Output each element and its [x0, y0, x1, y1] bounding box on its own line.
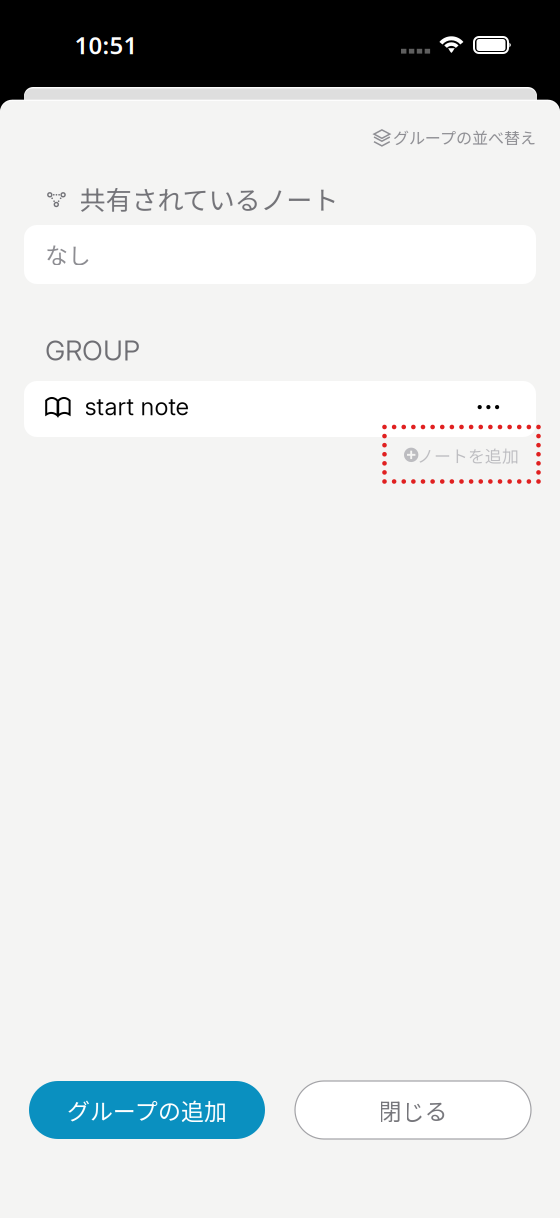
button[interactable]: グループの追加	[29, 1081, 265, 1139]
staticText: ノートを追加	[417, 443, 519, 467]
staticText: 閉じる	[378, 1093, 447, 1127]
staticText: GROUP	[45, 334, 140, 367]
staticText: 共有されているノート	[80, 180, 339, 217]
staticText: グループの追加	[67, 1093, 227, 1127]
button[interactable]: 閉じる	[295, 1081, 531, 1139]
staticText: 10:51	[74, 29, 137, 61]
staticText: なし	[45, 237, 91, 270]
button[interactable]: start note	[24, 381, 536, 437]
button[interactable]: グループの並べ替え	[360, 122, 536, 156]
staticText: グループの並べ替え	[393, 125, 536, 149]
staticText: start note	[84, 392, 189, 421]
button[interactable]: ノートを追加	[384, 427, 538, 481]
